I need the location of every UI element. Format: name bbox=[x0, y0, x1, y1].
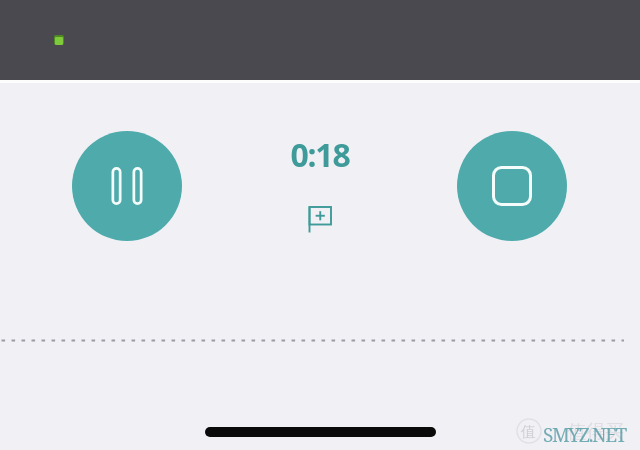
staticText: SMYZ.NET bbox=[543, 422, 626, 448]
staticText: 0:18 bbox=[290, 133, 350, 169]
staticText: 值 bbox=[521, 423, 536, 442]
button[interactable]: Add lap bbox=[296, 196, 344, 244]
button[interactable]: Stop bbox=[457, 131, 567, 241]
button[interactable]: Pause bbox=[72, 131, 182, 241]
staticText: 值得买 bbox=[567, 420, 624, 444]
other: App icon bbox=[54, 35, 64, 45]
